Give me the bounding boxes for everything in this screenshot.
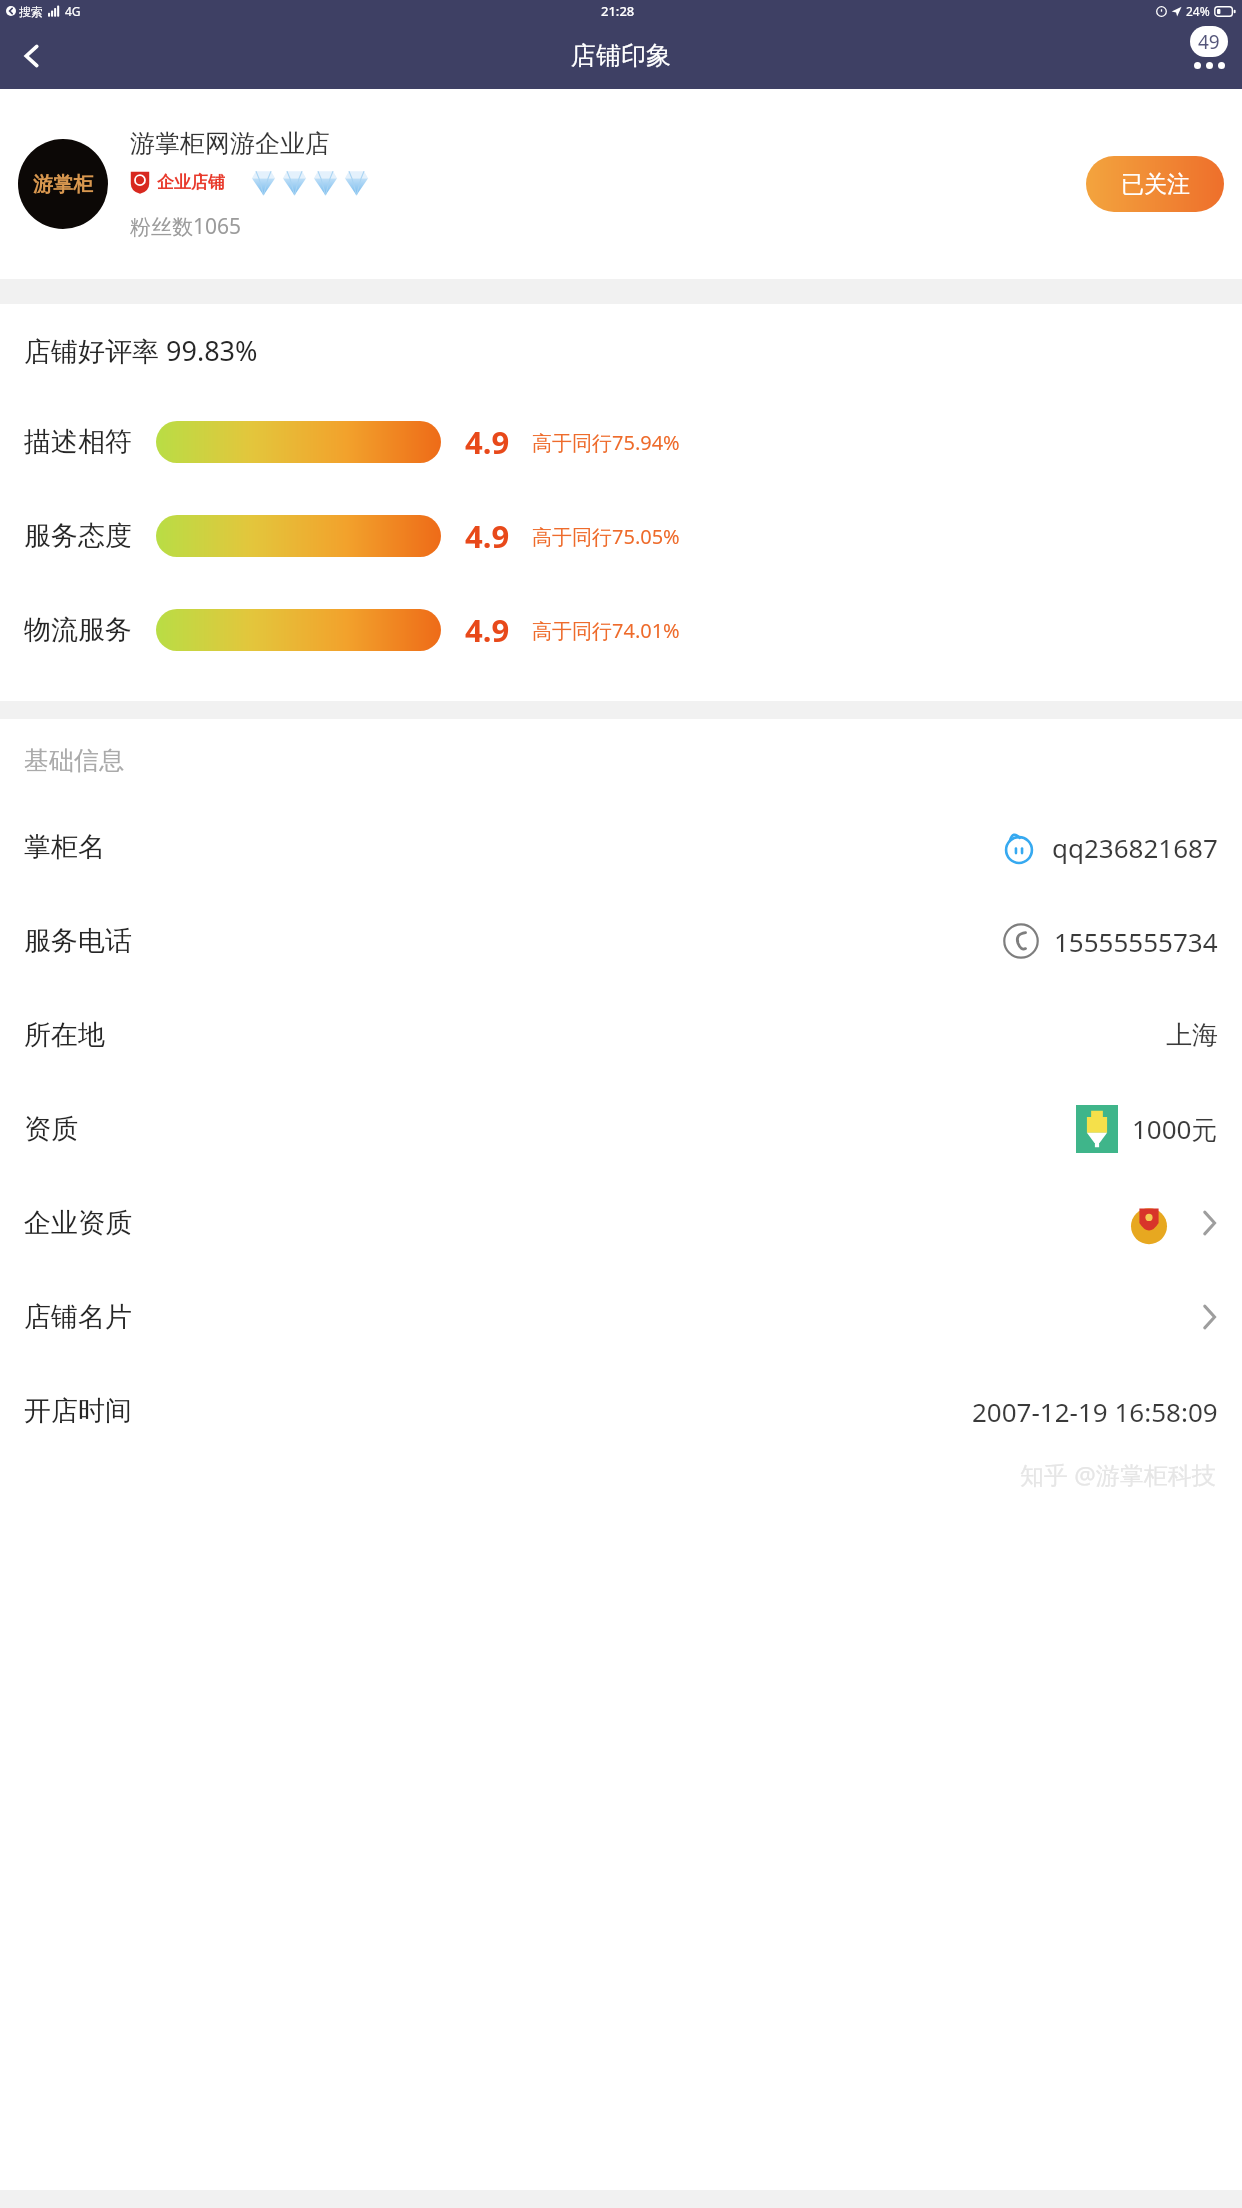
button[interactable]: 资质 <box>24 1082 1218 1176</box>
button[interactable]: 游掌柜 <box>18 89 1224 279</box>
staticText: 基础信息 <box>24 745 124 776</box>
button[interactable]: More options <box>1190 26 1228 69</box>
staticText: 高于同行75.94% <box>532 429 680 456</box>
button[interactable]: 企业资质 <box>24 1176 1218 1270</box>
staticText: 4G <box>65 3 81 19</box>
staticText: 游掌柜网游企业店 <box>130 128 330 159</box>
staticText: 企业资质 <box>24 1206 132 1240</box>
staticText: 上海 <box>1166 1019 1218 1052</box>
staticText: 店铺名片 <box>24 1300 132 1334</box>
staticText: 游掌柜 <box>33 172 93 197</box>
staticText: 高于同行74.01% <box>532 617 680 644</box>
staticText: 高于同行75.05% <box>532 523 680 550</box>
staticText: 服务态度 <box>24 519 132 553</box>
button[interactable]: 所在地 <box>24 988 1218 1082</box>
staticText: qq236821687 <box>1052 830 1218 865</box>
staticText: 粉丝数1065 <box>130 212 242 241</box>
button[interactable]: 物流服务 <box>24 583 1218 677</box>
staticText: 掌柜名 <box>24 830 105 864</box>
staticText: 已关注 <box>1121 170 1190 199</box>
staticText: 2007-12-19 16:58:09 <box>972 1394 1218 1429</box>
staticText: 资质 <box>24 1112 78 1146</box>
staticText: 1000元 <box>1132 1111 1218 1147</box>
button[interactable]: 开店时间 <box>24 1364 1218 1458</box>
staticText: 4.9 <box>465 515 510 557</box>
staticText: 描述相符 <box>24 425 132 459</box>
staticText: 店铺印象 <box>571 40 671 71</box>
staticText: 搜索 <box>19 4 43 19</box>
staticText: 服务电话 <box>24 924 132 958</box>
staticText: 物流服务 <box>24 613 132 647</box>
button[interactable]: 掌柜名 <box>24 800 1218 894</box>
button[interactable]: 已关注 <box>1086 156 1224 212</box>
staticText: 开店时间 <box>24 1394 132 1428</box>
button[interactable]: 描述相符 <box>24 395 1218 489</box>
button[interactable]: Back <box>6 30 58 82</box>
staticText: 知乎 @游掌柜科技 <box>1020 1458 1216 1491</box>
staticText: 4.9 <box>465 421 510 463</box>
staticText: 15555555734 <box>1054 924 1218 959</box>
staticText: 企业店铺 <box>157 172 225 193</box>
staticText: 49 <box>1198 29 1220 55</box>
staticText: 24% <box>1186 3 1210 19</box>
staticText: 店铺好评率 99.83% <box>24 332 258 369</box>
staticText: 21:28 <box>601 2 635 20</box>
button[interactable]: 服务电话 <box>24 894 1218 988</box>
staticText: 4.9 <box>465 609 510 651</box>
button[interactable]: 服务态度 <box>24 489 1218 583</box>
button[interactable]: 店铺名片 <box>24 1270 1218 1364</box>
staticText: 所在地 <box>24 1018 105 1052</box>
